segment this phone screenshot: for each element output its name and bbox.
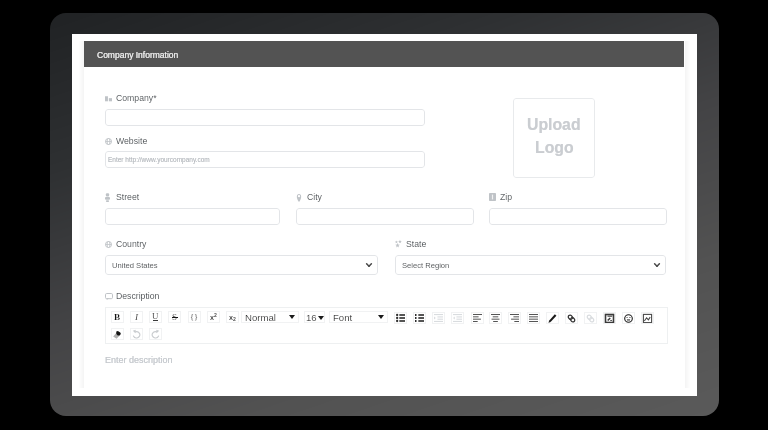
- button[interactable]: Code: [188, 311, 201, 323]
- staticText: Font: [333, 312, 353, 323]
- button[interactable]: United States: [105, 255, 378, 275]
- button[interactable]: Numbered list: [413, 312, 426, 324]
- button[interactable]: Align center: [489, 312, 502, 324]
- staticText: U: [152, 311, 159, 321]
- button[interactable]: Select Region: [395, 255, 666, 275]
- button[interactable]: 16: [304, 311, 325, 323]
- staticText: Enter description: [105, 355, 173, 365]
- staticText: State: [406, 239, 427, 249]
- staticText: Normal: [245, 312, 276, 323]
- button[interactable]: Underline: [149, 311, 162, 323]
- staticText: Zip: [500, 192, 513, 202]
- button[interactable]: Bulleted list: [394, 312, 407, 324]
- button[interactable]: Enter http://www.yourcompany.com: [105, 151, 425, 168]
- button[interactable]: Bold: [111, 311, 124, 323]
- button[interactable]: Insert link: [565, 312, 578, 324]
- staticText: B: [114, 312, 121, 322]
- staticText: Company Information: [97, 50, 179, 59]
- staticText: Enter http://www.yourcompany.com: [108, 156, 210, 163]
- button[interactable]: Increase indent: [432, 312, 445, 324]
- button[interactable]: Enter description: [105, 344, 668, 391]
- staticText: Company*: [116, 93, 157, 103]
- staticText: 2: [214, 312, 217, 318]
- button[interactable]: Company Information: [84, 41, 684, 67]
- button[interactable]: Decrease indent: [451, 312, 464, 324]
- button[interactable]: Strikethrough: [168, 311, 181, 323]
- staticText: S: [172, 312, 178, 322]
- staticText: Description: [116, 291, 160, 301]
- staticText: Select Region: [402, 261, 450, 269]
- button[interactable]: Insert image: [641, 312, 654, 324]
- staticText: 2: [233, 316, 236, 322]
- button[interactable]: Undo: [130, 328, 143, 340]
- button[interactable]: Font: [329, 311, 388, 323]
- button[interactable]: [105, 109, 425, 126]
- button[interactable]: Insert emoji: [622, 312, 635, 324]
- button[interactable]: Justify: [527, 312, 540, 324]
- staticText: x: [229, 313, 233, 321]
- staticText: 16: [306, 312, 317, 323]
- staticText: Logo: [535, 139, 574, 157]
- button[interactable]: Normal: [241, 311, 299, 323]
- staticText: Country: [116, 239, 147, 249]
- button[interactable]: Insert video: [603, 312, 616, 324]
- button[interactable]: Redo: [149, 328, 162, 340]
- button[interactable]: [489, 208, 667, 225]
- button[interactable]: Subscript: [226, 311, 239, 323]
- button[interactable]: Upload Logo: [513, 98, 595, 178]
- button[interactable]: Remove link: [584, 312, 597, 324]
- staticText: Website: [116, 136, 148, 146]
- button[interactable]: [296, 208, 474, 225]
- staticText: I: [135, 312, 139, 322]
- button[interactable]: Text colour: [546, 312, 559, 324]
- button[interactable]: Clear formatting: [111, 328, 124, 340]
- staticText: {}: [190, 313, 199, 322]
- staticText: Street: [116, 192, 140, 202]
- button[interactable]: [105, 208, 280, 225]
- staticText: United States: [112, 261, 158, 269]
- staticText: City: [307, 192, 322, 202]
- button[interactable]: Align right: [508, 312, 521, 324]
- button[interactable]: Italic: [130, 311, 143, 323]
- button[interactable]: Superscript: [207, 311, 220, 323]
- staticText: Upload: [527, 116, 581, 134]
- staticText: x: [210, 313, 214, 321]
- button[interactable]: Align left: [471, 312, 484, 324]
